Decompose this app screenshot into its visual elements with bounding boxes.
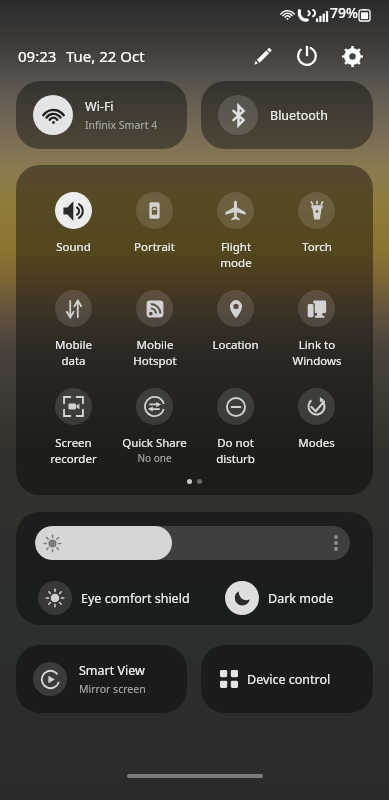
staticText: Quick Share [122,435,187,451]
button[interactable]: Brightness [35,526,350,560]
staticText: Wi-Fi [85,98,114,115]
staticText: Torch [302,239,332,255]
staticText: No one [137,451,172,465]
button[interactable]: Torch [276,192,357,255]
button[interactable]: Edit [244,38,280,74]
staticText: Mobile data [55,337,92,368]
staticText: Dark mode [268,590,334,607]
staticText: 79% [330,3,358,22]
staticText: Modes [298,435,335,451]
button[interactable]: Mobile Hotspot [114,290,195,368]
button[interactable]: Settings [334,38,370,74]
button[interactable]: Mobile data [32,290,114,368]
button[interactable]: Portrait [114,192,195,255]
button[interactable]: Wi-Fi [16,81,187,149]
button[interactable]: Eye comfort shield [38,581,203,615]
staticText: Screen recorder [50,435,97,466]
staticText: Sound [56,239,91,255]
staticText: Tue, 22 Oct [66,46,145,66]
button[interactable]: Modes [276,388,357,451]
button[interactable]: Sound [32,192,114,255]
staticText: Device control [247,671,331,688]
button[interactable]: Device control [201,645,373,713]
staticText: Mobile Hotspot [133,337,177,368]
button[interactable]: Quick Share [114,388,195,465]
staticText: Do not disturb [216,435,255,466]
button[interactable]: Bluetooth [201,81,373,149]
staticText: Portrait [134,239,175,255]
button[interactable]: Screen recorder [32,388,114,466]
staticText: Bluetooth [270,107,329,124]
staticText: Infinix Smart 4 [85,118,158,132]
button[interactable]: Location [195,290,276,353]
staticText: Link to Windows [292,337,342,368]
button[interactable]: Dark mode [225,581,373,615]
button[interactable]: Do not disturb [195,388,276,466]
staticText: Smart View [79,662,145,679]
staticText: Flight mode [220,239,252,270]
staticText: Eye comfort shield [81,590,190,607]
button[interactable]: Flight mode [195,192,276,270]
button[interactable]: Smart View [16,645,187,713]
staticText: Location [212,337,259,353]
button[interactable]: Power [289,38,325,74]
staticText: Mirror screen [79,682,146,696]
staticText: 09:23 [18,46,57,66]
button[interactable]: Link to Windows [276,290,357,368]
